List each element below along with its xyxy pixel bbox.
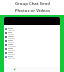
button[interactable]: [4, 51, 60, 55]
button[interactable]: [4, 27, 60, 31]
staticText: Group Chat Send: [15, 1, 50, 7]
button[interactable]: [4, 43, 60, 47]
button[interactable]: [4, 47, 60, 51]
button[interactable]: [4, 31, 60, 35]
button[interactable]: [4, 35, 60, 39]
staticText: Photos or Videos: [15, 8, 50, 14]
button[interactable]: Send: [13, 68, 16, 71]
button[interactable]: App bar: [4, 17, 60, 25]
button[interactable]: [4, 39, 60, 43]
button[interactable]: [4, 55, 60, 59]
